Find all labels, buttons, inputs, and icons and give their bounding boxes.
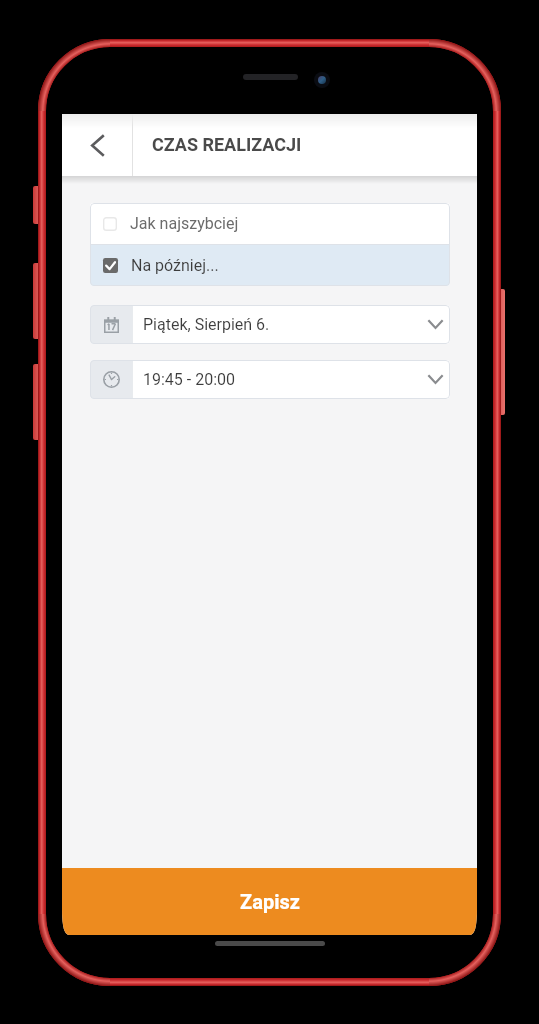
- button[interactable]: Na później...: [90, 245, 450, 286]
- staticText: Zapisz: [240, 890, 300, 913]
- button[interactable]: Back: [62, 114, 132, 176]
- staticText: 19:45 - 20:00: [143, 370, 420, 389]
- staticText: Na później...: [131, 256, 219, 275]
- staticText: CZAS REALIZACJI: [152, 134, 302, 155]
- staticText: Piątek, Sierpień 6.: [143, 315, 420, 334]
- button[interactable]: 19:45 - 20:00: [90, 360, 450, 399]
- button[interactable]: Jak najszybciej: [90, 203, 450, 244]
- button[interactable]: Zapisz: [62, 868, 477, 935]
- staticText: Jak najszybciej: [130, 214, 239, 233]
- button[interactable]: Piątek, Sierpień 6.: [90, 305, 450, 344]
